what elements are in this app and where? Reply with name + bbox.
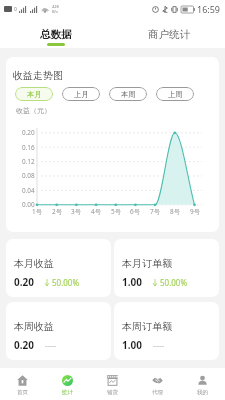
- staticText: 首页: [17, 389, 28, 396]
- staticText: 7号: [150, 207, 161, 216]
- staticText: 本月: [27, 90, 42, 99]
- staticText: 428: [52, 4, 59, 9]
- staticText: 我的: [197, 389, 208, 396]
- staticText: 5号: [111, 207, 122, 216]
- staticText: 总数据: [40, 28, 72, 41]
- staticText: 本周: [121, 90, 136, 99]
- button[interactable]: 上月: [62, 87, 100, 101]
- staticText: 3号: [71, 207, 82, 216]
- staticText: 铺货: [107, 389, 118, 396]
- staticText: 0.20: [14, 338, 34, 352]
- button[interactable]: 我的: [180, 368, 225, 400]
- button[interactable]: 代理: [135, 368, 180, 400]
- staticText: -----: [45, 341, 57, 351]
- button[interactable]: 本月订单额: [114, 239, 219, 297]
- staticText: 6号: [130, 207, 141, 216]
- staticText: 本周订单额: [122, 320, 172, 333]
- staticText: 本月收益: [14, 257, 54, 270]
- staticText: 统计: [62, 389, 73, 396]
- staticText: 0.04: [22, 186, 35, 195]
- staticText: 0.20: [14, 275, 34, 289]
- staticText: 1.00: [122, 275, 142, 289]
- staticText: 0.20: [22, 128, 35, 137]
- button[interactable]: 本周订单额: [114, 302, 219, 360]
- staticText: 商户统计: [148, 28, 190, 41]
- staticText: 上月: [74, 90, 89, 99]
- staticText: 9号: [190, 207, 201, 216]
- staticText: 收益走势图: [13, 69, 63, 82]
- staticText: 50.00%: [160, 277, 188, 288]
- staticText: 0.16: [22, 143, 35, 152]
- staticText: 收益（元）: [16, 106, 51, 115]
- staticText: 0.00: [22, 200, 35, 209]
- button[interactable]: 铺货: [90, 368, 135, 400]
- button[interactable]: 统计: [45, 368, 90, 400]
- button[interactable]: 上周: [156, 87, 194, 101]
- staticText: -----: [153, 341, 165, 351]
- staticText: 0: [14, 6, 17, 13]
- staticText: 上周: [168, 90, 183, 99]
- staticText: 0.08: [22, 171, 35, 180]
- staticText: 8号: [170, 207, 181, 216]
- staticText: 50.00%: [52, 277, 80, 288]
- button[interactable]: 本月: [15, 87, 53, 101]
- button[interactable]: 本周收益: [6, 302, 111, 360]
- button[interactable]: 本月收益: [6, 239, 111, 297]
- staticText: 本月订单额: [122, 257, 172, 270]
- staticText: 16:59: [197, 3, 221, 15]
- staticText: 1.00: [122, 338, 142, 352]
- button[interactable]: 总数据: [0, 18, 112, 48]
- staticText: 代理: [152, 389, 163, 396]
- staticText: 本周收益: [14, 320, 54, 333]
- button[interactable]: 商户统计: [112, 18, 225, 48]
- staticText: 2号: [52, 207, 63, 216]
- button[interactable]: 首页: [0, 368, 45, 400]
- staticText: 0.12: [22, 157, 35, 166]
- button[interactable]: 本周: [109, 87, 147, 101]
- staticText: B/s: [52, 9, 59, 14]
- staticText: 1号: [32, 207, 43, 216]
- staticText: 4号: [91, 207, 102, 216]
